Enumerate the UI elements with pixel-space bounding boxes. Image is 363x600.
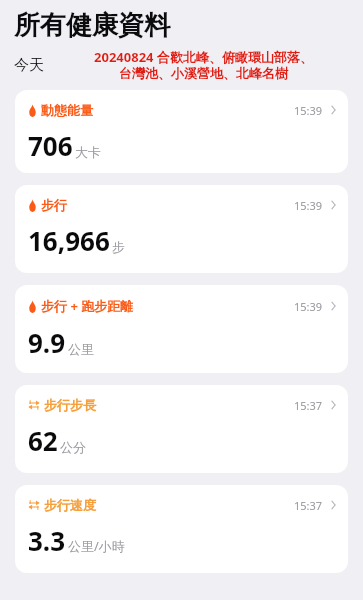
staticText: 15:37 [294, 398, 323, 413]
staticText: 所有健康資料 [14, 9, 170, 42]
staticText: 公里 [68, 341, 94, 357]
staticText: 步行 + 跑步距離 [41, 297, 134, 315]
button[interactable]: 動態能量 [15, 90, 348, 173]
staticText: 步行速度 [44, 497, 96, 513]
staticText: 20240824 合歡北峰、俯瞰環山部落、 台灣池、小溪營地、北峰名樹 [52, 48, 355, 82]
staticText: 今天 [14, 56, 44, 75]
button[interactable]: 步行步長 [15, 385, 348, 473]
staticText: 62 [28, 423, 58, 458]
staticText: 9.9 [28, 325, 66, 360]
button[interactable]: 步行速度 [15, 485, 348, 573]
staticText: 3.3 [28, 523, 66, 558]
staticText: 15:37 [294, 498, 323, 513]
staticText: 15:39 [294, 198, 323, 213]
staticText: 706 [28, 128, 73, 163]
staticText: 公里/小時 [68, 537, 125, 555]
staticText: 步 [112, 239, 125, 255]
staticText: 15:39 [294, 103, 323, 118]
button[interactable]: 步行 [15, 185, 348, 273]
staticText: 公分 [60, 439, 86, 455]
button[interactable]: 步行 + 跑步距離 [15, 285, 348, 373]
staticText: 大卡 [75, 144, 101, 160]
staticText: 動態能量 [41, 102, 93, 118]
staticText: 步行步長 [44, 397, 96, 413]
staticText: 15:39 [294, 299, 323, 314]
staticText: 步行 [41, 197, 67, 213]
staticText: 16,966 [28, 223, 110, 258]
